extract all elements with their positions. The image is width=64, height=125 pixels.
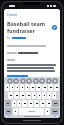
button[interactable]: Key — [47, 92, 51, 99]
button[interactable]: Key — [40, 100, 45, 107]
button[interactable]: GIF — [20, 78, 25, 83]
button[interactable]: Key — [36, 84, 41, 91]
button[interactable]: Key — [52, 92, 56, 99]
button[interactable]: Key — [52, 100, 59, 107]
button[interactable]: Key — [34, 100, 39, 107]
button[interactable]: Sticker — [26, 78, 31, 83]
button[interactable]: Cancel — [7, 12, 18, 18]
button[interactable]: Key — [45, 108, 50, 115]
button[interactable]: Key — [37, 92, 41, 99]
button[interactable]: Key — [17, 100, 21, 107]
button[interactable]: Key — [20, 84, 24, 91]
button[interactable]: Key — [19, 108, 44, 115]
staticText: Cancel — [7, 13, 18, 17]
button[interactable]: Key — [5, 100, 11, 107]
button[interactable]: Clipboard — [33, 78, 38, 83]
button[interactable]: Send — [52, 25, 57, 30]
button[interactable]: Key — [42, 84, 47, 91]
button[interactable]: Key — [15, 84, 19, 91]
button[interactable]: Key — [46, 100, 51, 107]
button[interactable]: Key — [13, 108, 18, 115]
button[interactable]: Key — [42, 92, 46, 99]
button[interactable]: Key — [8, 92, 13, 99]
button[interactable]: Text formatting — [7, 78, 12, 83]
button[interactable]: Key — [54, 84, 59, 91]
button[interactable]: Key — [28, 100, 33, 107]
button[interactable]: Key — [51, 108, 59, 115]
button[interactable]: Key — [10, 84, 14, 91]
button[interactable]: Key — [20, 92, 25, 99]
button[interactable]: Settings — [46, 78, 51, 83]
button[interactable]: Key — [5, 108, 12, 115]
staticText: To — [7, 36, 11, 40]
button[interactable]: Key — [25, 84, 29, 91]
button[interactable]: Key — [30, 84, 35, 91]
button[interactable]: Key — [5, 84, 9, 91]
button[interactable]: Emoji — [13, 78, 18, 83]
button[interactable]: Key — [48, 84, 53, 91]
button[interactable]: Key — [32, 92, 36, 99]
button[interactable]: Translate — [39, 78, 44, 83]
button[interactable]: Key — [14, 92, 19, 99]
button[interactable]: More — [52, 78, 57, 83]
button[interactable]: Key — [12, 100, 16, 107]
button[interactable]: Key — [26, 92, 31, 99]
staticText: Baseball team fundraiser — [7, 20, 50, 34]
button[interactable]: Key — [22, 100, 27, 107]
